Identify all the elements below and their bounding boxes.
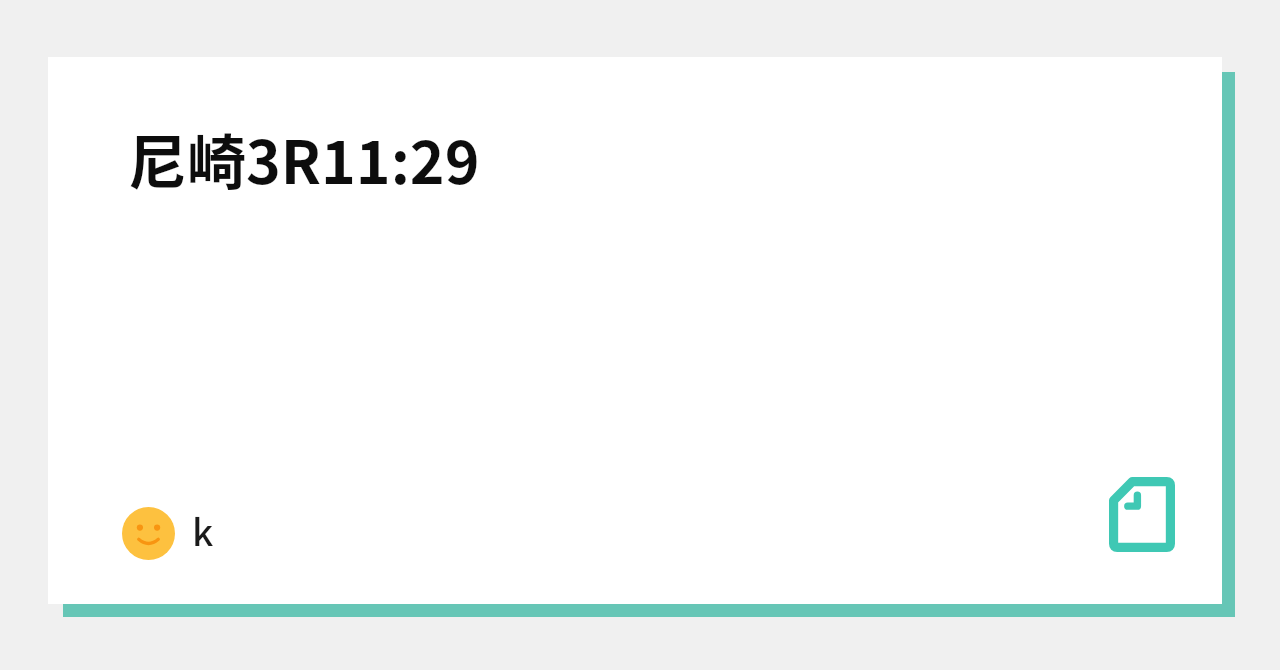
button[interactable]: 尼崎3R11:29 xyxy=(48,57,1222,604)
staticText: 尼崎3R11:29 xyxy=(128,116,480,201)
staticText: k xyxy=(192,503,214,557)
button[interactable]: note xyxy=(1109,477,1175,552)
button[interactable]: k xyxy=(122,506,214,560)
